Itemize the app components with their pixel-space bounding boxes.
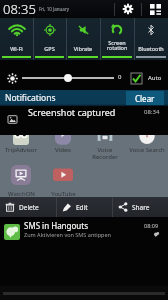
- staticText: GPS: [33, 45, 66, 52]
- staticText: TripAdvisor: [5, 146, 37, 154]
- staticText: WatchON: [8, 190, 35, 197]
- staticText: Screen rotation: [100, 39, 134, 52]
- staticText: Vibrate: [66, 45, 100, 52]
- staticText: 0: [118, 73, 122, 81]
- staticText: SMS in Hangouts: [24, 220, 88, 231]
- staticText: Fri, 10 January: [39, 6, 70, 12]
- button[interactable]: Settings: [115, 0, 141, 18]
- staticText: Voice Recorder: [92, 146, 118, 161]
- staticText: Wi-Fi: [0, 45, 33, 52]
- button[interactable]: Share: [113, 197, 168, 217]
- staticText: 08:35: [3, 0, 36, 18]
- staticText: Zum Aktivieren von SMS antippen: [24, 231, 111, 238]
- button[interactable]: Wi-Fi: [0, 18, 33, 60]
- staticText: Bluetooth: [134, 45, 168, 52]
- button[interactable]: Voice Search: [126, 135, 168, 154]
- button[interactable]: Quick settings grid: [142, 0, 168, 18]
- button[interactable]: TripAdvisor: [0, 135, 42, 154]
- staticText: Delete: [19, 203, 39, 212]
- button[interactable]: Clear: [126, 91, 164, 105]
- staticText: YouTube: [51, 190, 76, 197]
- staticText: Voice Search: [129, 146, 165, 154]
- staticText: 08:34: [144, 108, 160, 116]
- button[interactable]: Video: [42, 135, 84, 154]
- staticText: Clear: [135, 93, 155, 104]
- button[interactable]: Screenshot captured: [0, 106, 168, 135]
- staticText: Auto: [148, 74, 162, 82]
- button[interactable]: Bluetooth: [134, 18, 168, 60]
- staticText: Video: [55, 146, 71, 154]
- button[interactable]: Vibrate: [66, 18, 100, 60]
- staticText: Notifications: [5, 92, 56, 104]
- button[interactable]: Auto brightness: [131, 73, 142, 84]
- button[interactable]: Delete: [0, 197, 56, 217]
- button[interactable]: SMS in Hangouts: [0, 217, 168, 246]
- button[interactable]: Brightness: [7, 73, 18, 84]
- button[interactable]: WatchON: [0, 165, 42, 197]
- button[interactable]: Screen rotation: [100, 18, 134, 60]
- staticText: 08:09: [144, 222, 159, 229]
- button[interactable]: GPS: [33, 18, 66, 60]
- staticText: Share: [132, 203, 150, 212]
- staticText: Edit: [76, 203, 88, 212]
- button[interactable]: Voice Recorder: [84, 135, 126, 161]
- button[interactable]: Edit: [57, 197, 112, 217]
- button[interactable]: YouTube: [42, 165, 84, 197]
- staticText: Screenshot captured: [28, 106, 116, 118]
